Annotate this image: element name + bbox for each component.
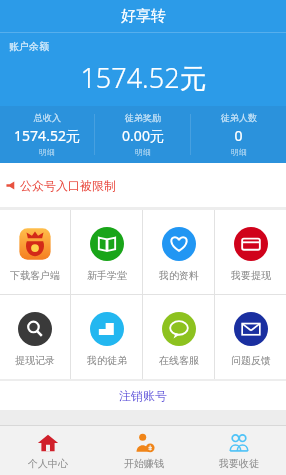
staticText: 1574.52元 (14, 126, 80, 145)
staticText: 我要收徒 (219, 457, 259, 470)
button[interactable]: 注销账号 (0, 381, 286, 410)
staticText: 0 (234, 126, 243, 145)
button[interactable]: stair (71, 295, 142, 379)
button[interactable]: card (215, 210, 286, 294)
staticText: 我的资料 (159, 269, 199, 282)
button[interactable]: 我要收徒 (191, 426, 286, 475)
button[interactable]: app (0, 210, 70, 294)
staticText: 明细 (39, 147, 55, 157)
staticText: 新手学堂 (87, 269, 127, 282)
button[interactable]: heart (143, 210, 214, 294)
staticText: 注销账号 (119, 388, 167, 403)
other: book (90, 227, 124, 261)
staticText: 徒弟奖励 (125, 112, 161, 123)
staticText: 下载客户端 (10, 269, 60, 282)
staticText: 徒弟人数 (221, 112, 257, 123)
staticText: 我的徒弟 (87, 354, 127, 367)
other: 公告 (6, 181, 15, 190)
other: 开始赚钱 (133, 432, 155, 454)
staticText: 我要提现 (231, 269, 271, 282)
button[interactable]: 开始赚钱 (96, 426, 191, 475)
staticText: 问题反馈 (231, 354, 271, 367)
button[interactable]: 徒弟人数 (191, 106, 286, 163)
staticText: 好享转 (121, 7, 166, 26)
staticText: 总收入 (34, 112, 61, 123)
button[interactable]: book (71, 210, 142, 294)
other: 我要收徒 (228, 432, 250, 454)
staticText: 明细 (231, 147, 247, 157)
button[interactable]: search (0, 295, 70, 379)
staticText: 账户余额 (9, 40, 49, 53)
other: 个人中心 (37, 432, 59, 454)
button[interactable]: 总收入 (0, 106, 94, 163)
other: app (18, 227, 52, 261)
staticText: 开始赚钱 (124, 457, 164, 470)
staticText: 公众号入口被限制 (20, 178, 116, 193)
button[interactable]: chat (143, 295, 214, 379)
staticText: 在线客服 (159, 354, 199, 367)
button[interactable]: 徒弟奖励 (95, 106, 190, 163)
staticText: 个人中心 (28, 457, 68, 470)
button[interactable]: 个人中心 (0, 426, 96, 475)
staticText: 1574.52元 (80, 59, 207, 96)
other: mail (234, 312, 268, 346)
other: chat (162, 312, 196, 346)
button[interactable]: 公告 (0, 163, 286, 207)
other: card (234, 227, 268, 261)
other: search (18, 312, 52, 346)
staticText: 明细 (135, 147, 151, 157)
button[interactable]: mail (215, 295, 286, 379)
other: heart (162, 227, 196, 261)
staticText: 0.00元 (122, 126, 164, 145)
staticText: 提现记录 (15, 354, 55, 367)
other: stair (90, 312, 124, 346)
